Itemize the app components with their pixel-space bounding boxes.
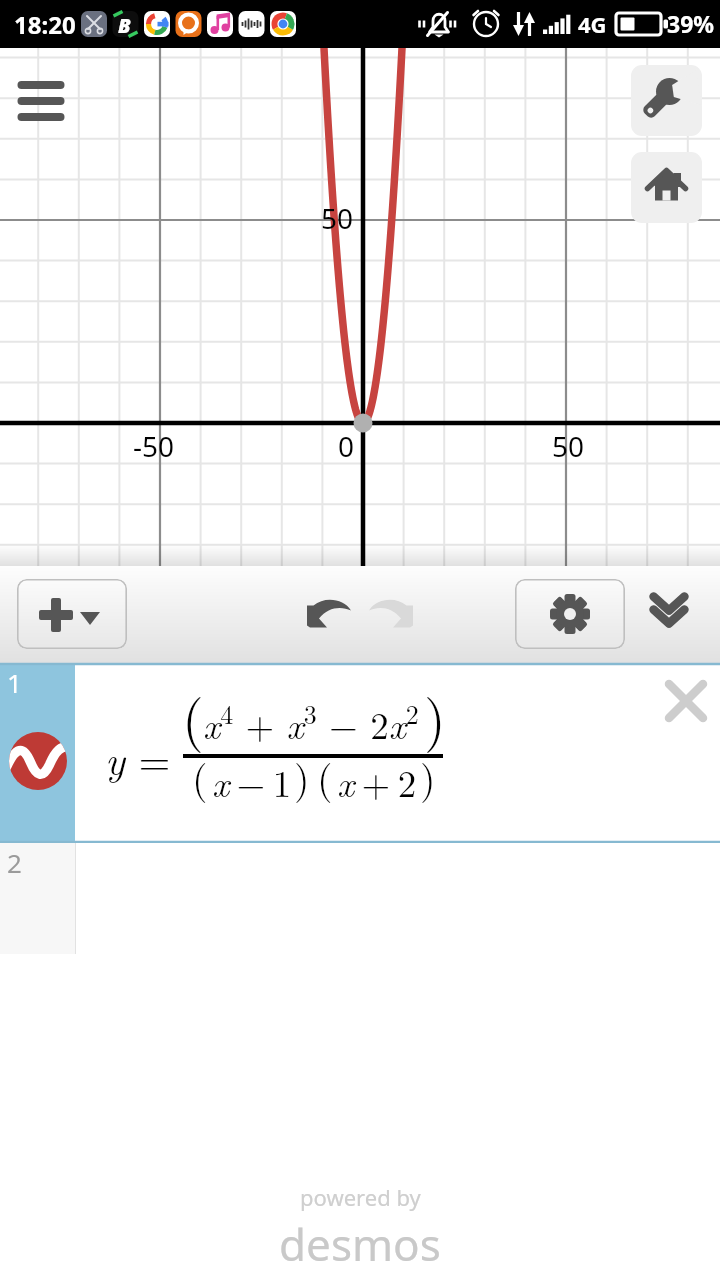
staticText: 50: [552, 427, 585, 465]
staticText: 50: [321, 199, 354, 237]
staticText: 39%: [667, 8, 715, 39]
staticText: x + 2: [337, 755, 417, 807]
staticText: x − 1: [212, 755, 292, 807]
button[interactable]: Undo: [295, 580, 363, 648]
staticText: 4G: [578, 9, 607, 39]
button[interactable]: Redo: [357, 580, 425, 648]
button[interactable]: Hide keypad: [634, 580, 703, 649]
staticText: y =: [105, 729, 171, 787]
staticText: 2: [7, 845, 22, 880]
staticText: desmos: [279, 1214, 441, 1274]
staticText: -50: [133, 427, 175, 465]
staticText: 1: [7, 665, 22, 700]
staticText: (: [182, 676, 204, 755]
staticText: 0: [338, 427, 355, 465]
button[interactable]: Delete expression: [657, 672, 715, 730]
staticText: powered by: [300, 1182, 421, 1212]
button[interactable]: Graph settings: [515, 579, 625, 649]
button[interactable]: Home: [631, 152, 702, 223]
staticText: ): [424, 676, 446, 755]
button[interactable]: Graph tools: [631, 65, 702, 136]
staticText: (: [317, 748, 333, 805]
staticText: ): [420, 748, 436, 805]
staticText: (: [192, 748, 208, 805]
button[interactable]: 2: [0, 843, 720, 954]
button[interactable]: Add expression: [17, 579, 127, 649]
button[interactable]: Menu: [6, 66, 76, 136]
staticText: ): [294, 748, 310, 805]
staticText: x4 + x3 − 2x2: [203, 695, 419, 750]
staticText: 18:20: [14, 8, 76, 41]
button[interactable]: 1: [0, 663, 720, 843]
staticText: B: [118, 12, 131, 39]
